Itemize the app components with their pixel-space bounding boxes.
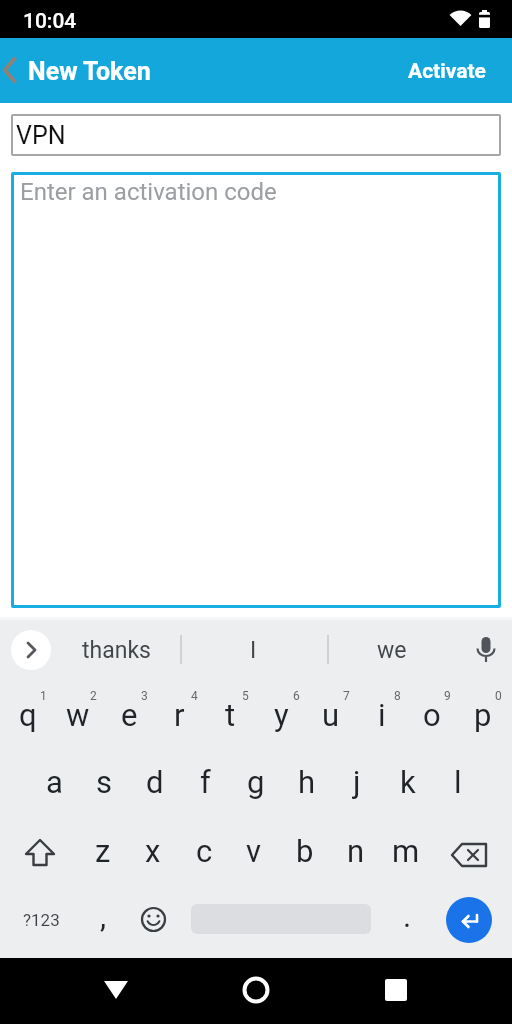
staticText: w	[66, 697, 90, 733]
staticText: ,	[100, 898, 107, 934]
button[interactable]: t	[205, 693, 255, 737]
button[interactable]	[448, 838, 494, 872]
staticText: 8	[394, 689, 401, 703]
button[interactable]	[96, 970, 136, 1010]
button[interactable]: j	[332, 760, 382, 804]
staticText: f	[200, 764, 211, 800]
staticText: 6	[293, 689, 300, 703]
staticText: l	[454, 764, 462, 800]
button[interactable]: a	[29, 760, 79, 804]
button[interactable]: r	[154, 693, 204, 737]
staticText: 7	[343, 689, 350, 703]
button[interactable]: l	[433, 760, 483, 804]
staticText: 4	[191, 689, 198, 703]
button[interactable]: p	[458, 693, 508, 737]
button[interactable]: d	[130, 760, 180, 804]
button[interactable]: Enter an activation code	[11, 172, 501, 608]
button[interactable]: c	[179, 829, 229, 873]
button[interactable]: Activate	[390, 55, 486, 87]
staticText: c	[196, 833, 213, 869]
staticText: k	[400, 764, 416, 800]
staticText: 2	[90, 689, 97, 703]
staticText: r	[174, 697, 185, 733]
button[interactable]: s	[79, 760, 129, 804]
staticText: h	[298, 764, 316, 800]
button[interactable]: w	[53, 693, 103, 737]
button[interactable]: i	[357, 693, 407, 737]
staticText: d	[146, 764, 164, 800]
button[interactable]	[18, 838, 62, 872]
button[interactable]: k	[383, 760, 433, 804]
staticText: e	[121, 697, 138, 733]
staticText: we	[377, 637, 407, 664]
staticText: x	[145, 833, 161, 869]
button[interactable]: thanks	[66, 634, 166, 666]
staticText: j	[353, 764, 361, 800]
button[interactable]: ?123	[15, 903, 67, 937]
staticText: thanks	[82, 637, 151, 664]
button[interactable]: .	[392, 894, 422, 938]
button[interactable]: g	[231, 760, 281, 804]
staticText: Enter an activation code	[20, 178, 277, 206]
button[interactable]: VPN	[11, 114, 501, 156]
staticText: v	[246, 833, 262, 869]
staticText: 9	[444, 689, 451, 703]
button[interactable]: e	[104, 693, 154, 737]
staticText: 0	[495, 689, 502, 703]
staticText: 10:04	[23, 9, 77, 34]
button[interactable]	[236, 970, 276, 1010]
staticText: Activate	[408, 59, 486, 84]
button[interactable]: n	[331, 829, 381, 873]
staticText: q	[19, 697, 37, 733]
staticText: i	[378, 697, 386, 733]
staticText: VPN	[16, 121, 66, 150]
button[interactable]	[138, 904, 169, 935]
staticText: I	[250, 637, 257, 664]
staticText: a	[46, 764, 63, 800]
button[interactable]: y	[256, 693, 306, 737]
staticText: 1	[40, 689, 47, 703]
staticText: u	[322, 697, 340, 733]
button[interactable]: f	[180, 760, 230, 804]
button[interactable]	[376, 970, 416, 1010]
button[interactable]	[446, 897, 492, 943]
button[interactable]: b	[280, 829, 330, 873]
button[interactable]: I	[203, 634, 303, 666]
staticText: 5	[242, 689, 249, 703]
staticText: z	[95, 833, 111, 869]
button[interactable]: m	[381, 829, 431, 873]
button[interactable]	[0, 55, 24, 85]
button[interactable]: u	[306, 693, 356, 737]
staticText: ?123	[23, 910, 60, 930]
button[interactable]: q	[3, 693, 53, 737]
button[interactable]: ,	[88, 894, 118, 938]
staticText: b	[296, 833, 314, 869]
staticText: o	[423, 697, 441, 733]
staticText: g	[247, 764, 265, 800]
staticText: n	[347, 833, 365, 869]
button[interactable]	[11, 630, 51, 670]
button[interactable]: h	[282, 760, 332, 804]
staticText: s	[96, 764, 112, 800]
staticText: t	[225, 697, 236, 733]
staticText: y	[274, 697, 289, 733]
staticText: New Token	[28, 57, 151, 86]
button[interactable]: x	[128, 829, 178, 873]
staticText: p	[474, 697, 492, 733]
staticText: .	[403, 898, 412, 934]
staticText: 3	[141, 689, 148, 703]
staticText: m	[392, 833, 420, 869]
button[interactable]: we	[342, 634, 442, 666]
button[interactable]: o	[407, 693, 457, 737]
button[interactable]: z	[78, 829, 128, 873]
button[interactable]: v	[229, 829, 279, 873]
